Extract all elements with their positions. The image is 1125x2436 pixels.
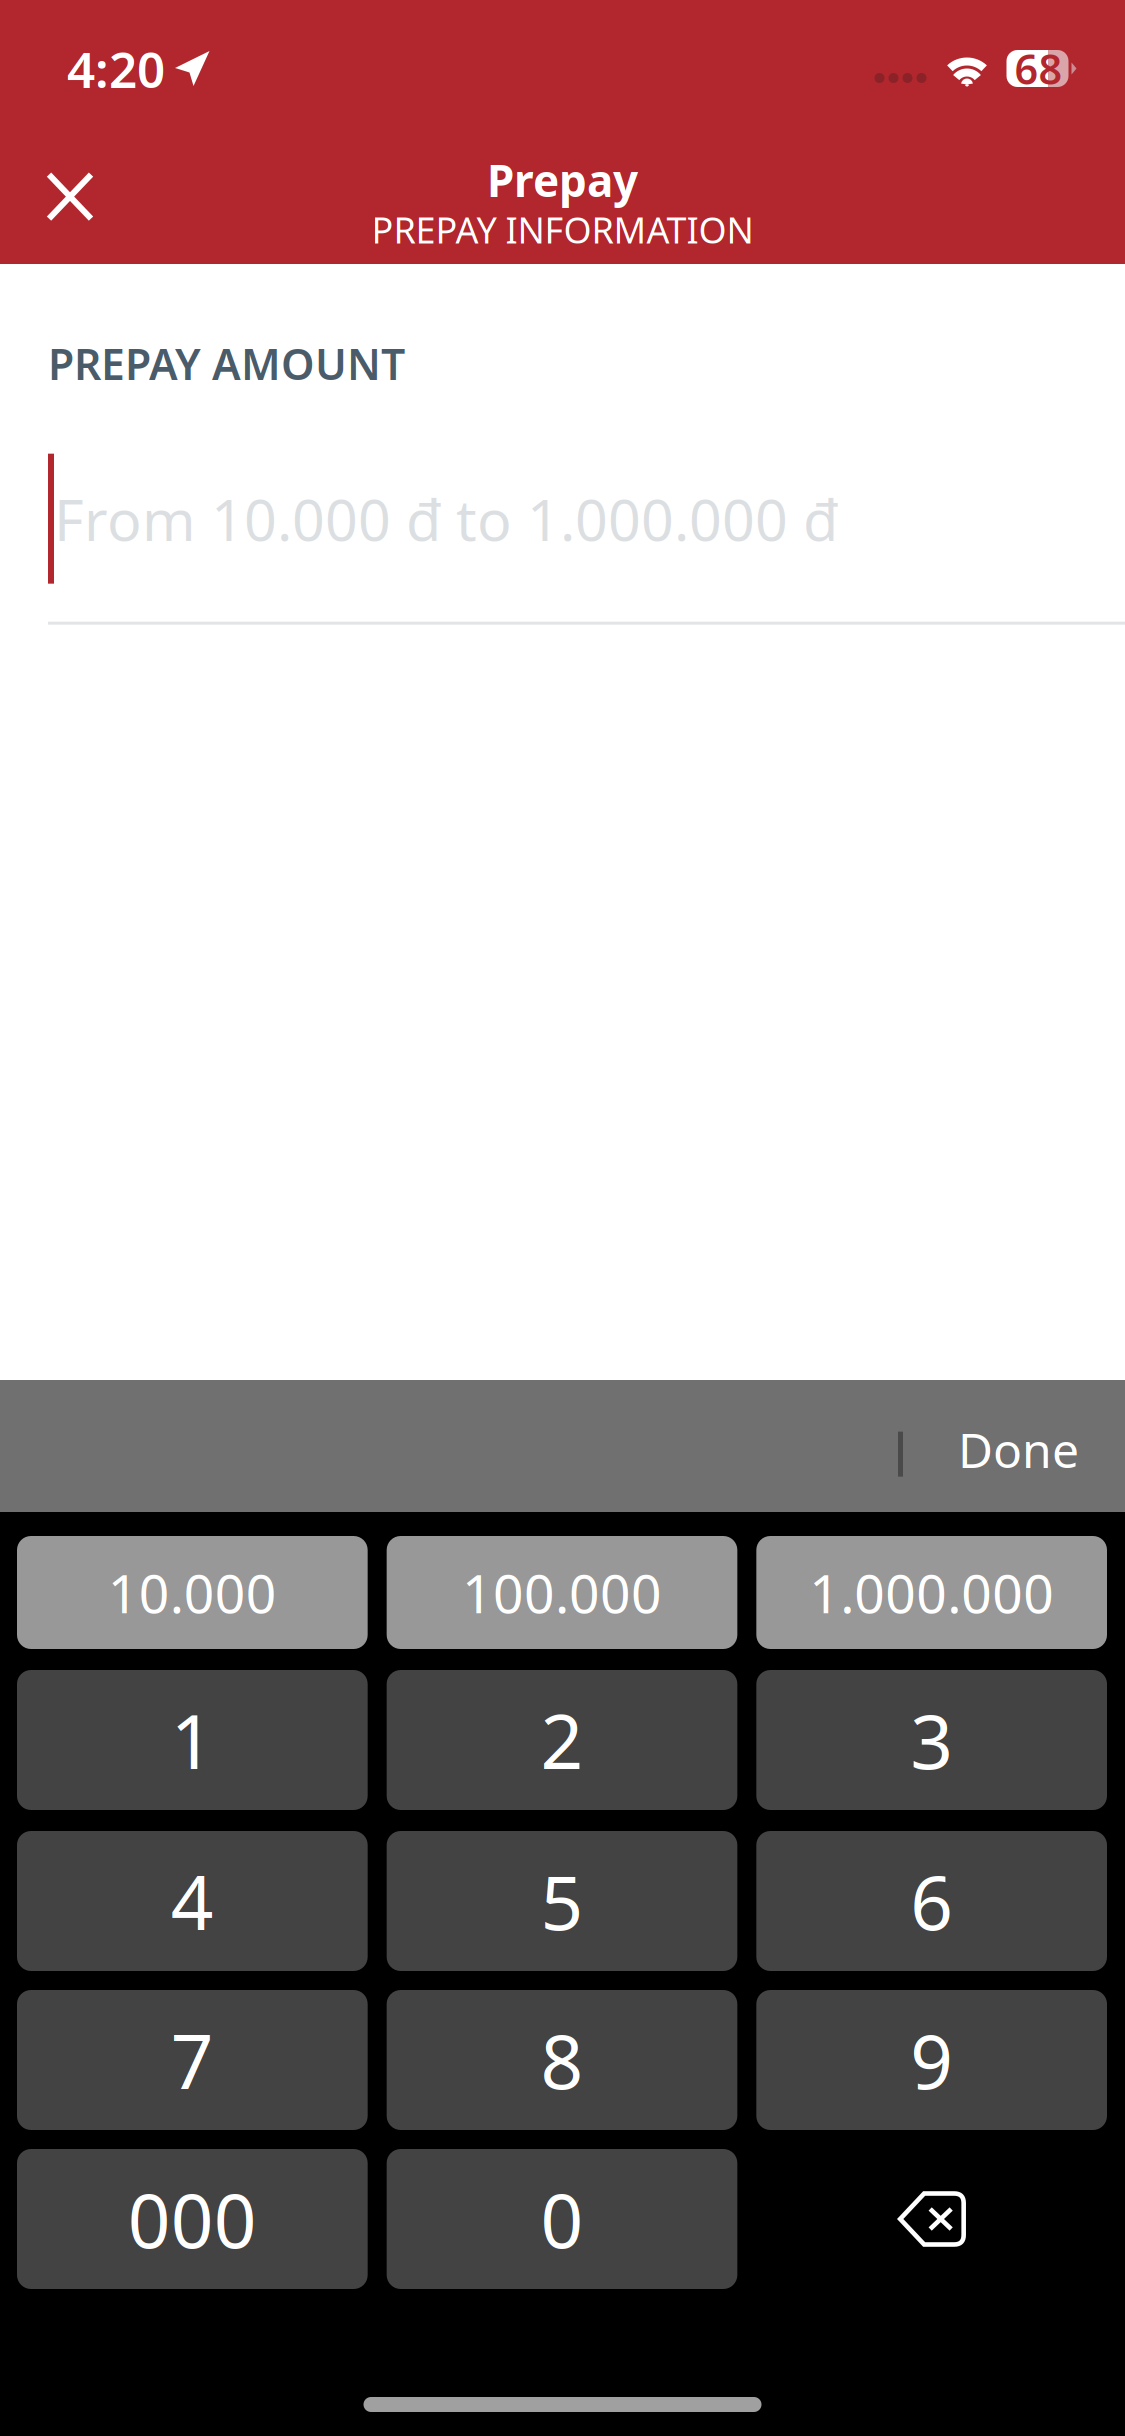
staticText: Done xyxy=(958,1418,1079,1481)
staticText: 10.000 xyxy=(108,1557,277,1628)
staticText: 3 xyxy=(910,1690,953,1790)
button[interactable]: 6 xyxy=(756,1831,1107,1971)
button[interactable]: 4 xyxy=(17,1831,368,1971)
button[interactable]: 3 xyxy=(756,1670,1107,1810)
button[interactable]: Done xyxy=(916,1387,1121,1512)
button[interactable]: 1.000.000 xyxy=(756,1536,1107,1649)
staticText: 2 xyxy=(540,1690,583,1790)
button[interactable]: 100.000 xyxy=(387,1536,737,1649)
button[interactable]: 0 xyxy=(387,2149,737,2289)
staticText: 68 xyxy=(1014,41,1062,96)
staticText: 0 xyxy=(540,2169,583,2269)
staticText: PREPAY AMOUNT xyxy=(48,335,405,392)
button[interactable]: 8 xyxy=(387,1990,737,2130)
button[interactable]: 10.000 xyxy=(17,1536,368,1649)
button[interactable]: Delete xyxy=(756,2149,1107,2289)
staticText: 6 xyxy=(910,1851,953,1951)
button[interactable]: 5 xyxy=(387,1831,737,1971)
staticText: Prepay xyxy=(487,151,638,209)
staticText: 5 xyxy=(540,1851,583,1951)
button[interactable]: 000 xyxy=(17,2149,368,2289)
staticText: PREPAY INFORMATION xyxy=(371,206,753,253)
button[interactable]: 1 xyxy=(17,1670,368,1810)
button[interactable]: 9 xyxy=(756,1990,1107,2130)
staticText: 7 xyxy=(171,2010,214,2110)
staticText: 000 xyxy=(128,2169,257,2269)
button[interactable]: 2 xyxy=(387,1670,737,1810)
staticText: 4 xyxy=(171,1851,214,1951)
staticText: From 10.000 đ to 1.000.000 đ xyxy=(54,481,838,557)
button[interactable]: Close xyxy=(19,145,121,249)
staticText: 4:20 xyxy=(67,36,165,101)
staticText: 8 xyxy=(540,2010,583,2110)
staticText: 1.000.000 xyxy=(809,1557,1054,1628)
staticText: 9 xyxy=(910,2010,953,2110)
button[interactable]: 7 xyxy=(17,1990,368,2130)
staticText: 100.000 xyxy=(462,1557,662,1628)
staticText: 1 xyxy=(171,1690,214,1790)
